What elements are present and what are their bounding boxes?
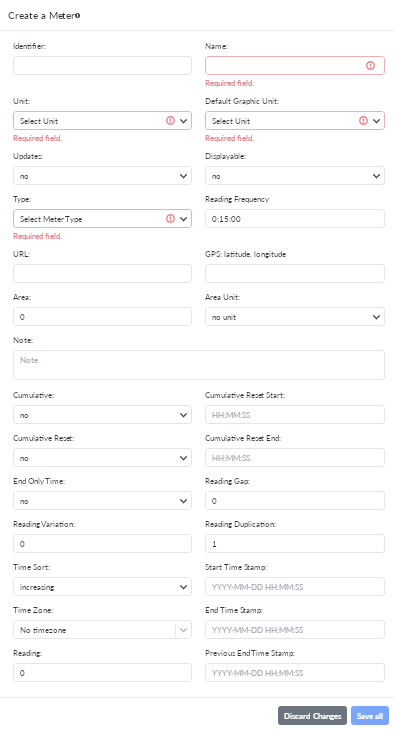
staticText: Start Time Stamp: bbox=[205, 562, 268, 572]
button[interactable]: Select Unit bbox=[205, 111, 385, 130]
staticText: Reading Duplication: bbox=[205, 519, 276, 529]
staticText: 0 bbox=[20, 312, 25, 322]
staticText: 0 bbox=[20, 668, 25, 678]
staticText: 1 bbox=[212, 539, 217, 549]
button[interactable]: YYYY-MM-DD HH:MM:SS bbox=[205, 663, 385, 682]
button[interactable]: no bbox=[13, 491, 192, 510]
staticText: HH:MM:SS bbox=[212, 410, 250, 420]
staticText: URL: bbox=[13, 249, 30, 259]
staticText: no unit bbox=[212, 312, 236, 322]
staticText: no bbox=[212, 171, 221, 181]
button[interactable]: 0 bbox=[13, 534, 192, 553]
button[interactable]: Select Meter Type bbox=[13, 209, 192, 228]
staticText: no bbox=[20, 410, 29, 420]
button[interactable]: 0 bbox=[13, 307, 192, 326]
button[interactable]: No timezone bbox=[13, 620, 192, 639]
staticText: Reading: bbox=[13, 648, 42, 658]
button[interactable]: HH:MM:SS bbox=[205, 405, 385, 424]
button[interactable]: no bbox=[13, 166, 192, 185]
staticText: Type: bbox=[13, 194, 32, 204]
staticText: no bbox=[20, 496, 29, 506]
staticText: Default Graphic Unit: bbox=[205, 96, 279, 106]
button[interactable]: no unit bbox=[205, 307, 385, 326]
staticText: Reading Frequency bbox=[205, 194, 270, 204]
button[interactable]: Note bbox=[13, 350, 385, 380]
button[interactable]: YYYY-MM-DD HH:MM:SS bbox=[205, 577, 385, 596]
button[interactable]: increasing bbox=[13, 577, 192, 596]
staticText: no bbox=[20, 453, 29, 463]
staticText: YYYY-MM-DD HH:MM:SS bbox=[212, 582, 304, 592]
staticText: 0:15:00 bbox=[212, 214, 241, 224]
staticText: GPS: latitude, longitude bbox=[205, 249, 286, 259]
staticText: Identifier: bbox=[13, 41, 46, 51]
button[interactable]: 0 bbox=[205, 491, 385, 510]
staticText: no bbox=[20, 171, 29, 181]
staticText: Note bbox=[20, 355, 38, 365]
staticText: End Time Stamp: bbox=[205, 605, 264, 615]
staticText: Unit: bbox=[13, 96, 30, 106]
staticText: Discard Changes bbox=[284, 711, 341, 721]
staticText: No timezone bbox=[20, 625, 66, 635]
staticText: Time Sort: bbox=[13, 562, 50, 572]
staticText: Note: bbox=[13, 335, 33, 345]
staticText: Reading Variation: bbox=[13, 519, 75, 529]
staticText: Cumulative Reset End: bbox=[205, 433, 282, 443]
staticText: Reading Gap: bbox=[205, 476, 250, 486]
button[interactable] bbox=[13, 56, 192, 75]
button[interactable]: HH:MM:SS bbox=[205, 448, 385, 467]
staticText: Time Zone: bbox=[13, 605, 53, 615]
staticText: Area: bbox=[13, 292, 31, 302]
staticText: Select Unit bbox=[20, 116, 58, 126]
staticText: Required field. bbox=[13, 133, 62, 142]
staticText: End Only Time: bbox=[13, 476, 66, 486]
button[interactable]: 0:15:00 bbox=[205, 209, 385, 228]
button[interactable]: Create a Meter bbox=[8, 9, 82, 21]
staticText: 0 bbox=[20, 539, 25, 549]
button[interactable] bbox=[205, 264, 385, 283]
staticText: Updates: bbox=[13, 151, 43, 161]
staticText: Cumulative Reset Start: bbox=[205, 390, 286, 400]
button[interactable]: no bbox=[13, 405, 192, 424]
staticText: Select Unit bbox=[212, 116, 250, 126]
button[interactable]: no bbox=[13, 448, 192, 467]
button[interactable] bbox=[13, 264, 192, 283]
staticText: Save all bbox=[357, 711, 383, 721]
staticText: Select Meter Type bbox=[20, 214, 82, 224]
staticText: 0 bbox=[212, 496, 217, 506]
staticText: Area Unit: bbox=[205, 292, 240, 302]
button[interactable]: 1 bbox=[205, 534, 385, 553]
button[interactable]: Select Unit bbox=[13, 111, 192, 130]
button[interactable]: Discard Changes bbox=[278, 706, 347, 725]
staticText: HH:MM:SS bbox=[212, 453, 250, 463]
staticText: YYYY-MM-DD HH:MM:SS bbox=[212, 625, 304, 635]
button[interactable]: 0 bbox=[13, 663, 192, 682]
staticText: Cumulative Reset: bbox=[13, 433, 75, 443]
staticText: YYYY-MM-DD HH:MM:SS bbox=[212, 668, 304, 678]
staticText: Previous End Time Stamp: bbox=[205, 648, 296, 658]
staticText: increasing bbox=[20, 582, 54, 592]
staticText: Displayable: bbox=[205, 151, 246, 161]
button[interactable]: no bbox=[205, 166, 385, 185]
staticText: Required field. bbox=[205, 78, 254, 87]
staticText: Required field. bbox=[13, 231, 62, 240]
staticText: Required field. bbox=[205, 133, 254, 142]
button[interactable] bbox=[205, 56, 385, 75]
other: Help bbox=[74, 12, 80, 18]
staticText: Cumulative: bbox=[13, 390, 54, 400]
staticText: Create a Meter bbox=[8, 9, 76, 21]
staticText: Name: bbox=[205, 41, 228, 51]
button[interactable]: YYYY-MM-DD HH:MM:SS bbox=[205, 620, 385, 639]
button[interactable]: Save all bbox=[351, 706, 389, 725]
